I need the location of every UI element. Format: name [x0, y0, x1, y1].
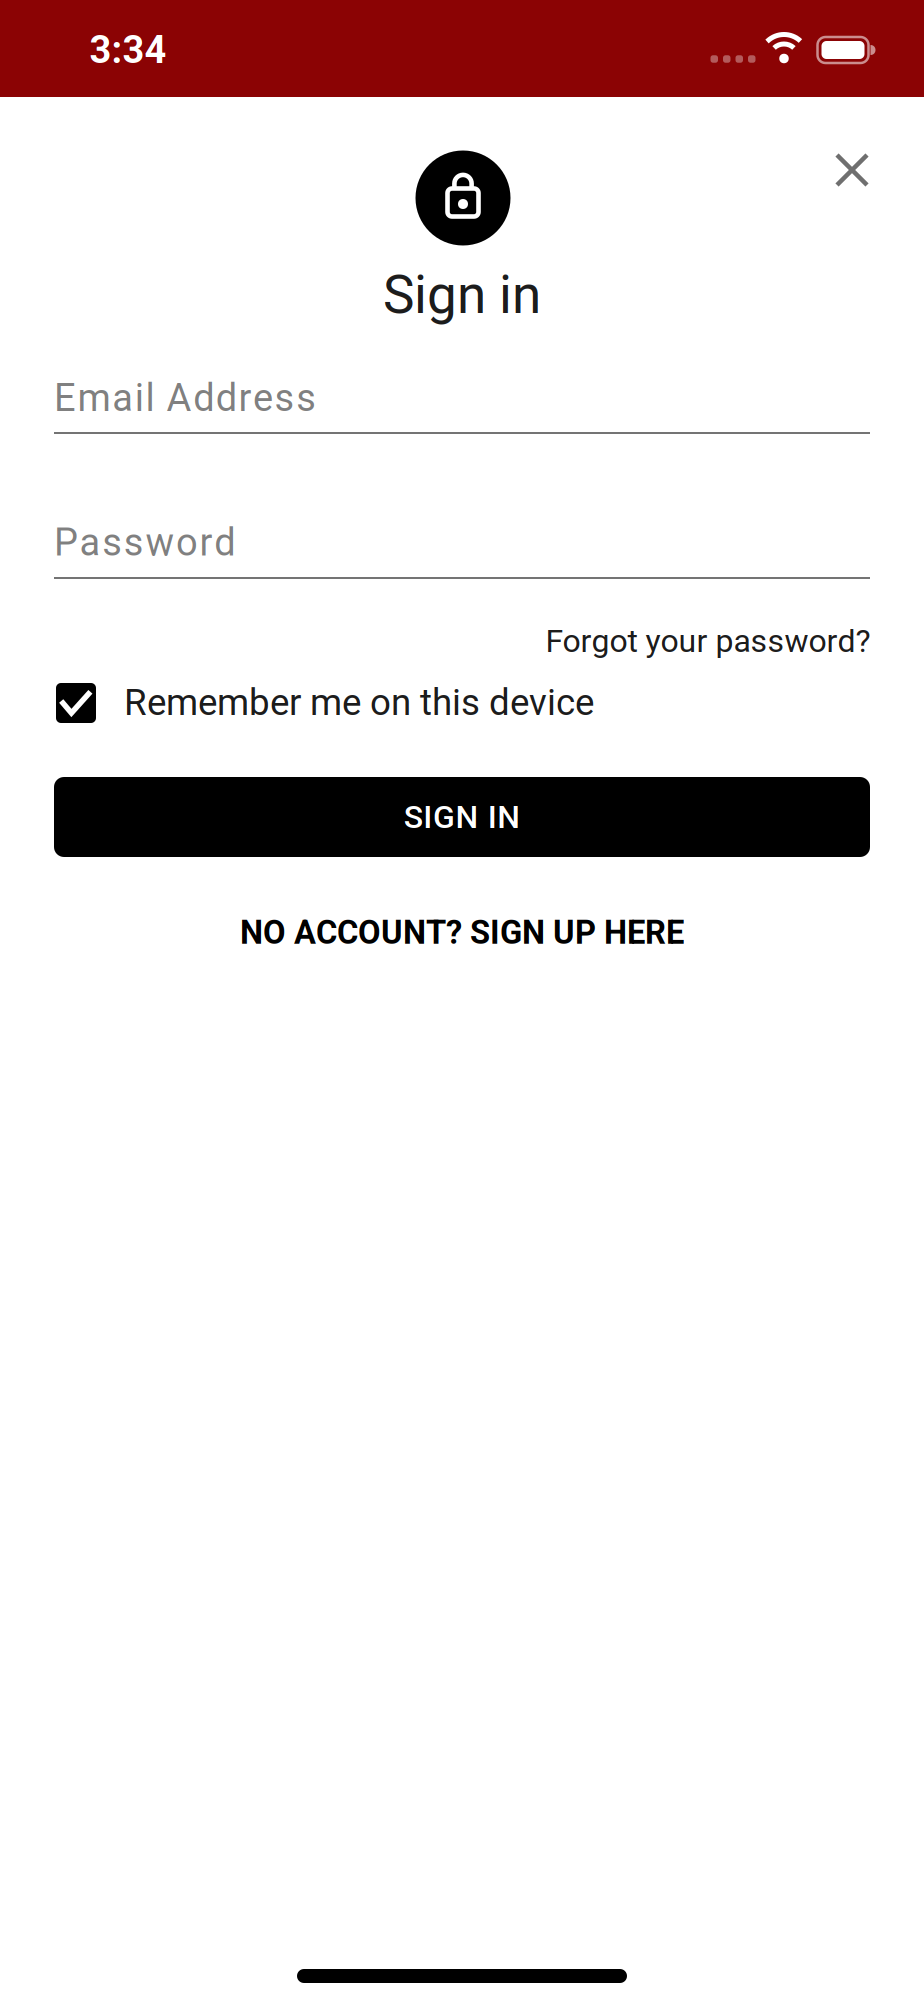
staticText: NO ACCOUNT? SIGN UP HERE: [240, 913, 684, 952]
button[interactable]: Close: [816, 134, 888, 206]
staticText: 3:34: [89, 28, 166, 72]
staticText: Email Address: [54, 376, 316, 420]
staticText: Forgot your password?: [545, 622, 870, 660]
button[interactable]: Forgot your password?: [545, 622, 870, 660]
staticText: SIGN IN: [404, 798, 520, 836]
button[interactable]: NO ACCOUNT? SIGN UP HERE: [240, 913, 684, 952]
staticText: Remember me on this device: [124, 681, 594, 724]
button[interactable]: SIGN IN: [54, 777, 870, 857]
staticText: Sign in: [383, 264, 541, 326]
staticText: Password: [54, 520, 235, 565]
button[interactable]: Remember me on this device: [54, 681, 870, 733]
